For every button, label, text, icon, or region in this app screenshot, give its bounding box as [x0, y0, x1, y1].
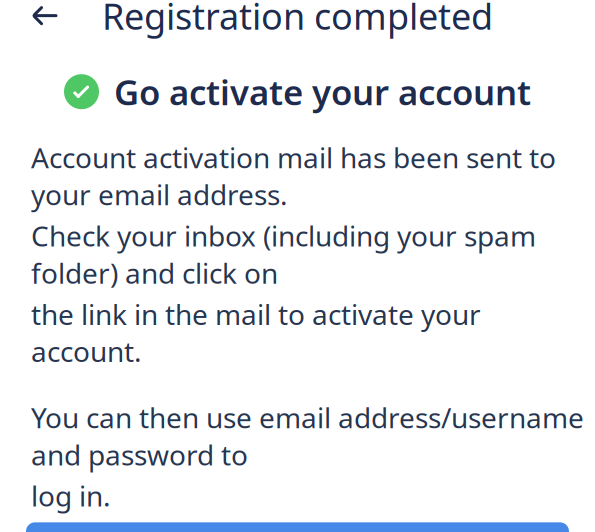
button[interactable]: Log in now — [26, 522, 569, 532]
staticText: You can then use email address/username … — [31, 399, 584, 473]
staticText: Go activate your account — [114, 69, 531, 115]
staticText: the link in the mail to activate your ac… — [31, 295, 481, 370]
staticText: log in. — [31, 477, 111, 514]
staticText: Registration completed — [102, 0, 493, 40]
button[interactable]: Back — [19, 0, 71, 42]
staticText: Check your inbox (including your spam fo… — [31, 217, 536, 291]
staticText: Account activation mail has been sent to… — [31, 139, 556, 213]
